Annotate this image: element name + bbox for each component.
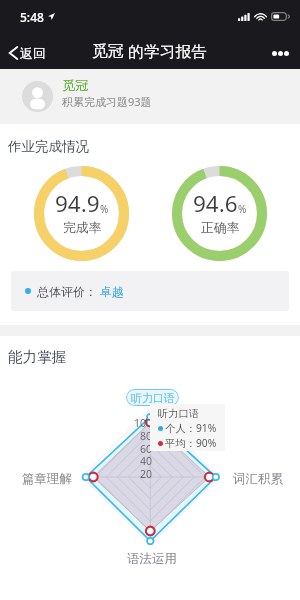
staticText: 作业完成情况 xyxy=(8,138,89,155)
staticText: 总体评价： xyxy=(37,284,97,299)
staticText: 40 xyxy=(139,454,152,466)
staticText: 听力口语 xyxy=(158,407,200,420)
button[interactable]: 返回 xyxy=(0,32,56,69)
staticText: 个人：91% xyxy=(165,421,217,435)
staticText: 语法运用 xyxy=(127,551,177,567)
button[interactable]: 总体评价： xyxy=(11,271,289,311)
staticText: 积累完成习题93题 xyxy=(62,94,152,109)
staticText: 觅冠 xyxy=(62,77,88,93)
staticText: 篇章理解 xyxy=(22,471,72,487)
staticText: 完成率 xyxy=(63,220,102,236)
staticText: 卓越 xyxy=(100,284,124,299)
staticText: 5:48 xyxy=(20,9,44,25)
staticText: 100 xyxy=(133,416,152,428)
staticText: 平均：90% xyxy=(165,436,217,450)
staticText: 返回 xyxy=(20,45,46,61)
button[interactable]: 听力口语 xyxy=(126,389,179,406)
staticText: 听力口语 xyxy=(131,391,175,405)
staticText: 的学习报告 xyxy=(124,40,208,62)
staticText: 能力掌握 xyxy=(8,348,67,366)
button[interactable]: 觅冠 xyxy=(0,69,300,124)
staticText: % xyxy=(100,202,109,216)
staticText: 94.6 xyxy=(193,188,238,219)
staticText: 正确率 xyxy=(201,220,240,236)
staticText: 60 xyxy=(139,442,152,454)
button[interactable]: More options xyxy=(261,32,300,69)
staticText: 觅冠 xyxy=(92,41,124,61)
staticText: 词汇积累 xyxy=(233,471,283,487)
staticText: 20 xyxy=(139,467,152,479)
staticText: % xyxy=(238,202,247,216)
staticText: 94.9 xyxy=(55,188,100,219)
staticText: 80 xyxy=(139,429,152,441)
